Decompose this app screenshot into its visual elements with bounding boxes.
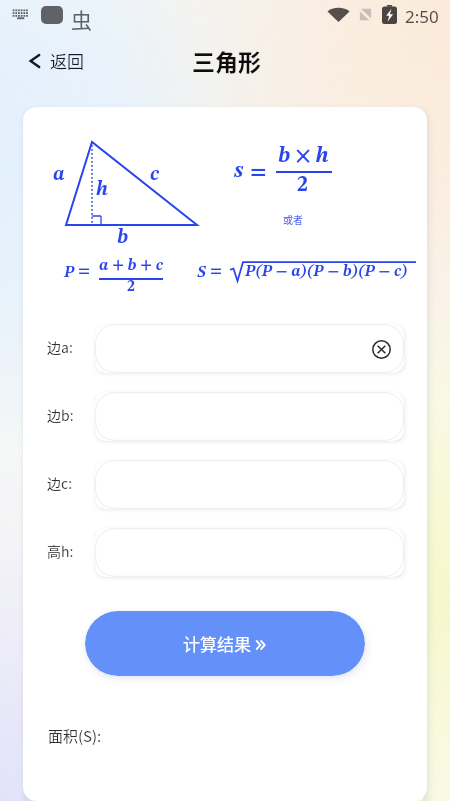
- staticText: 2: [127, 279, 135, 295]
- staticText: b × h: [278, 145, 329, 167]
- staticText: c: [150, 165, 159, 185]
- staticText: 高h:: [47, 541, 74, 561]
- staticText: 三角形: [192, 44, 261, 77]
- button[interactable]: Clear: [368, 336, 394, 362]
- staticText: 或者: [283, 212, 303, 226]
- staticText: 返回: [50, 48, 84, 73]
- staticText: P: [64, 265, 75, 281]
- staticText: h: [96, 180, 109, 200]
- staticText: 边b:: [47, 405, 74, 425]
- button[interactable]: 返回: [22, 42, 96, 79]
- staticText: S: [197, 265, 206, 281]
- staticText: 2: [297, 174, 308, 196]
- button[interactable]: [95, 528, 404, 577]
- button[interactable]: 计算结果: [85, 611, 365, 676]
- staticText: P(P − a)(P − b)(P − c): [245, 264, 408, 280]
- staticText: s: [234, 160, 244, 182]
- staticText: a + b + c: [99, 258, 163, 274]
- staticText: =: [210, 264, 223, 280]
- staticText: 2:50: [405, 5, 439, 28]
- staticText: 边a:: [47, 337, 73, 357]
- button[interactable]: [95, 392, 404, 441]
- button[interactable]: Clear: [95, 324, 404, 373]
- staticText: 面积(S):: [48, 725, 102, 747]
- staticText: a: [53, 165, 65, 185]
- staticText: =: [78, 264, 91, 280]
- button[interactable]: [95, 460, 404, 509]
- staticText: =: [250, 161, 267, 183]
- staticText: 边c:: [47, 473, 73, 493]
- staticText: 计算结果: [183, 631, 251, 656]
- staticText: b: [117, 228, 129, 248]
- staticText: 虫: [71, 4, 92, 34]
